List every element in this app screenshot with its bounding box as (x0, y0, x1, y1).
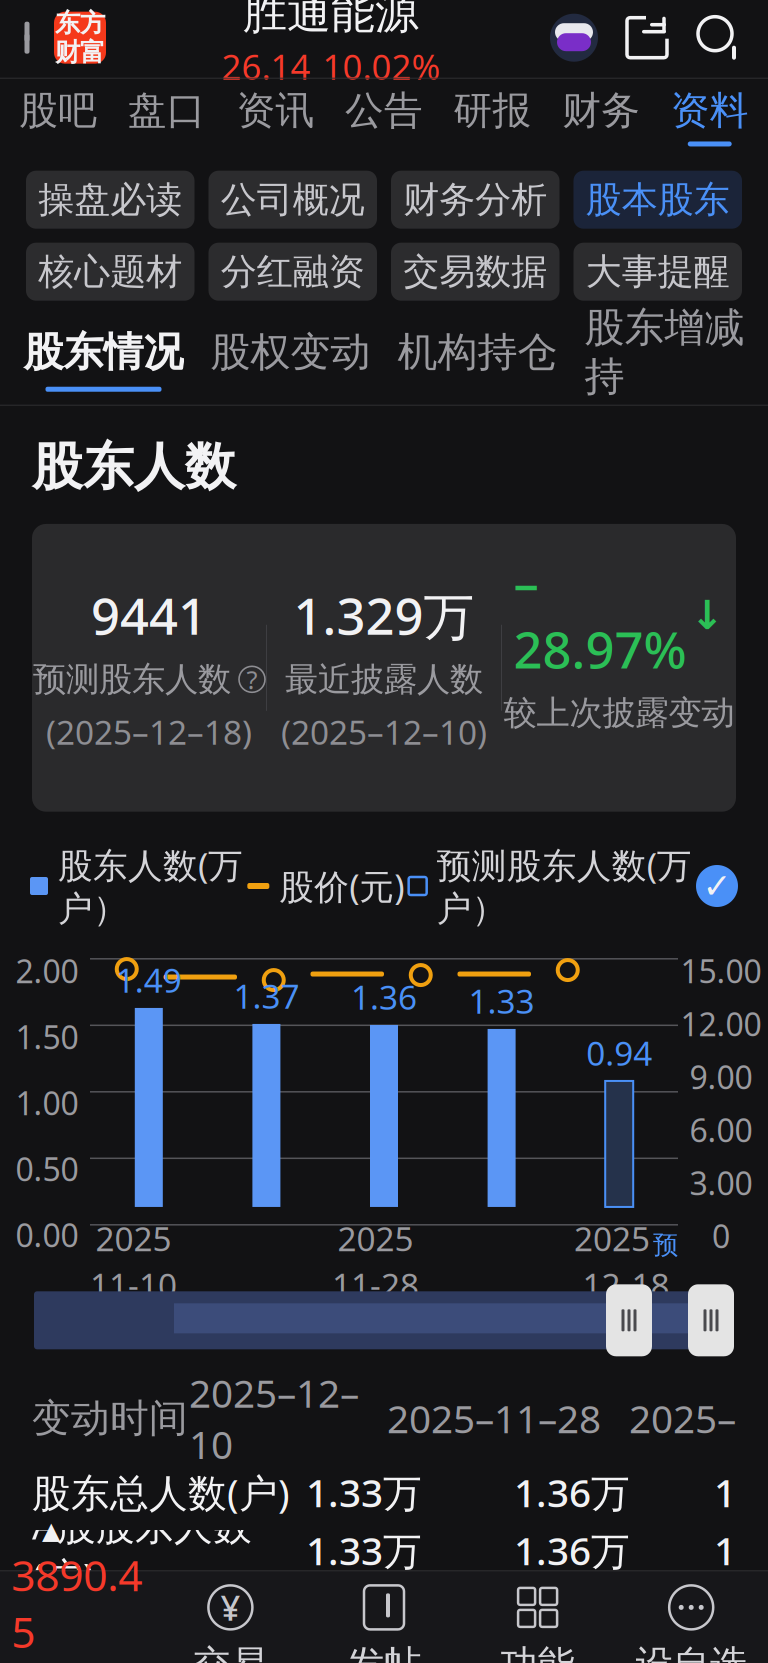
staticText: ✓ (702, 866, 731, 906)
button[interactable]: 功能 (461, 1574, 614, 1663)
staticText: 3890.45 (11, 1546, 142, 1660)
staticText: 财富 (55, 37, 105, 68)
staticText: 1 (714, 1467, 736, 1518)
staticText: 盘口 (128, 87, 206, 134)
staticText: 核心题材 (38, 250, 182, 294)
staticText: 股东总人数(户) (32, 1467, 290, 1518)
staticText: A股股东人数(户) (32, 1499, 252, 1602)
button[interactable]: Adjust range (688, 1284, 734, 1356)
staticText: 资讯 (236, 87, 314, 134)
button[interactable]: AI assistant (550, 14, 598, 62)
staticText: 9.00 (689, 1056, 752, 1098)
staticText: 股东增减持 (584, 303, 744, 401)
staticText: 交易数据 (403, 250, 547, 294)
staticText: 0 (712, 1215, 730, 1257)
staticText: 2025 (574, 1216, 650, 1261)
staticText: 预 (653, 1229, 678, 1260)
staticText: 1.37 (233, 974, 299, 1018)
button[interactable]: 股吧 (4, 79, 113, 155)
button[interactable]: 分红融资 (208, 243, 377, 301)
staticText: 胜通能源 (243, 0, 419, 40)
staticText: 0.94 (586, 1031, 652, 1075)
staticText: 股本股东 (586, 178, 730, 222)
button[interactable]: 大事提醒 (573, 243, 742, 301)
staticText: 1.00 (15, 1082, 78, 1124)
button[interactable]: Search (696, 15, 742, 61)
button[interactable]: 机构持仓 (384, 323, 571, 397)
staticText: ? (246, 662, 257, 696)
button[interactable]: 资讯 (221, 79, 330, 155)
button[interactable]: Adjust range (606, 1284, 652, 1356)
staticText: 操盘必读 (38, 178, 182, 222)
button[interactable]: 设自选 (614, 1574, 768, 1663)
button[interactable]: Back (0, 0, 112, 76)
staticText: 2025–12–10 (189, 1367, 359, 1470)
staticText: 机构持仓 (397, 328, 557, 377)
staticText: 发帖 (347, 1641, 421, 1663)
staticText: 1 (714, 1525, 736, 1576)
staticText: 15.00 (680, 950, 761, 992)
staticText: 东方 (55, 8, 105, 39)
staticText: 6.00 (689, 1109, 752, 1151)
staticText: 0.50 (15, 1148, 78, 1190)
staticText: 1.36万 (514, 1525, 630, 1576)
staticText: 1.33 (469, 979, 535, 1023)
button[interactable]: 财务分析 (391, 171, 559, 229)
staticText: 股东情况 (23, 328, 183, 377)
staticText: 3.00 (689, 1162, 752, 1204)
staticText: (2025–12–18) (46, 710, 252, 754)
staticText: 交易 (193, 1641, 267, 1663)
button[interactable]: 交易数据 (391, 243, 559, 301)
staticText: 1.329万 (293, 582, 474, 649)
staticText: 12.00 (680, 1003, 761, 1045)
staticText: 较上次披露变动 (503, 692, 734, 733)
button[interactable]: 股权变动 (197, 323, 384, 397)
staticText: 股吧 (19, 87, 97, 134)
staticText: ▲ (42, 1517, 60, 1544)
button[interactable]: 核心题材 (26, 243, 194, 301)
staticText: 功能 (501, 1641, 575, 1663)
staticText: 股价(元) (279, 863, 404, 909)
staticText: 2025– (629, 1393, 736, 1444)
staticText: 2025 (95, 1216, 171, 1261)
staticText: 公告 (345, 87, 423, 134)
staticText: 财务分析 (403, 178, 547, 222)
staticText: 1.36 (351, 975, 417, 1019)
button[interactable]: ▲ (0, 1517, 154, 1663)
staticText: 12-18 (582, 1263, 669, 1307)
staticText: 1.33万 (306, 1525, 422, 1576)
staticText: 财务 (562, 87, 640, 134)
button[interactable]: 财务 (547, 79, 655, 155)
staticText: 1.49 (116, 958, 182, 1002)
staticText: 2.00 (15, 950, 78, 992)
staticText: 11-28 (332, 1263, 419, 1307)
button[interactable]: 公司概况 (208, 171, 377, 229)
button[interactable]: 股东增减持 (571, 323, 758, 397)
button[interactable]: 股本股东 (573, 171, 742, 229)
button[interactable]: 资料 (655, 79, 764, 155)
button[interactable]: 股东情况 (10, 323, 197, 397)
staticText: ↓ (690, 592, 724, 638)
staticText: 公司概况 (221, 178, 365, 222)
button[interactable]: 盘口 (113, 79, 221, 155)
button[interactable]: Share (624, 15, 670, 61)
staticText: 11-10 (90, 1263, 177, 1307)
button[interactable]: 操盘必读 (26, 171, 194, 229)
button[interactable]: ¥ (154, 1574, 307, 1663)
button[interactable]: 发帖 (307, 1574, 461, 1663)
button[interactable]: 公告 (330, 79, 438, 155)
staticText: 分红融资 (221, 250, 365, 294)
staticText: 股东人数 (32, 436, 236, 498)
staticText: 设自选 (636, 1641, 747, 1663)
staticText: 股权变动 (210, 328, 370, 377)
staticText: 1.50 (15, 1016, 78, 1058)
staticText: 预测股东人数 (33, 659, 231, 700)
staticText: 大事提醒 (586, 250, 730, 294)
button[interactable]: 研报 (438, 79, 547, 155)
staticText: 9441 (91, 582, 207, 649)
staticText: 股东人数(万户） (58, 842, 243, 930)
staticText: 2025–11–28 (387, 1393, 601, 1444)
button[interactable]: Toggle forecast series (696, 865, 738, 907)
